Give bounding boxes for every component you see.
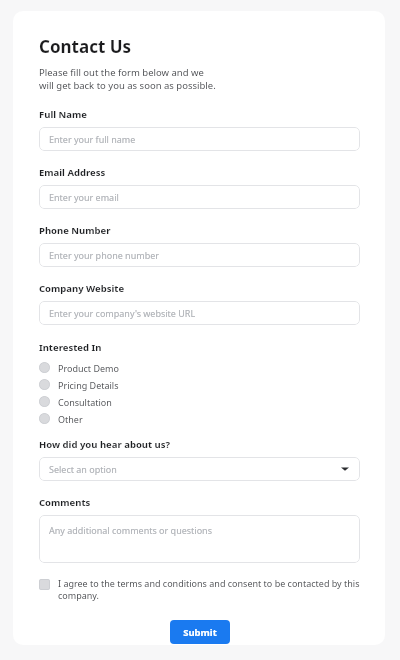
- button[interactable]: Enter your company's website URL: [39, 301, 360, 325]
- staticText: Enter your full name: [49, 133, 136, 145]
- button[interactable]: Other: [39, 410, 360, 427]
- staticText: Phone Number: [39, 224, 111, 237]
- staticText: Contact Us: [39, 35, 132, 58]
- button[interactable]: Any additional comments or questions: [39, 515, 360, 563]
- staticText: Consultation: [58, 396, 112, 408]
- staticText: Any additional comments or questions: [49, 524, 212, 536]
- staticText: Product Demo: [58, 362, 119, 374]
- staticText: I agree to the terms and conditions and …: [58, 577, 360, 602]
- button[interactable]: Pricing Details: [39, 376, 360, 393]
- staticText: Pricing Details: [58, 379, 119, 391]
- staticText: Enter your phone number: [49, 249, 159, 261]
- staticText: Other: [58, 413, 83, 425]
- button[interactable]: Enter your full name: [39, 127, 360, 151]
- button[interactable]: Enter your email: [39, 185, 360, 209]
- staticText: Please fill out the form below and we wi…: [39, 66, 216, 92]
- staticText: How did you hear about us?: [39, 438, 171, 451]
- staticText: Company Website: [39, 282, 125, 295]
- button[interactable]: Select an option: [39, 457, 360, 481]
- button[interactable]: Consultation: [39, 393, 360, 410]
- button[interactable]: Submit: [170, 620, 230, 644]
- staticText: Submit: [183, 626, 217, 639]
- button[interactable]: I agree to the terms and conditions and …: [39, 577, 360, 602]
- staticText: Email Address: [39, 166, 106, 179]
- staticText: Select an option: [49, 463, 117, 475]
- staticText: Interested In: [39, 341, 102, 354]
- staticText: Comments: [39, 496, 91, 509]
- staticText: Enter your company's website URL: [49, 307, 196, 319]
- staticText: Enter your email: [49, 191, 119, 203]
- button[interactable]: Product Demo: [39, 359, 360, 376]
- button[interactable]: Enter your phone number: [39, 243, 360, 267]
- staticText: Full Name: [39, 108, 87, 121]
